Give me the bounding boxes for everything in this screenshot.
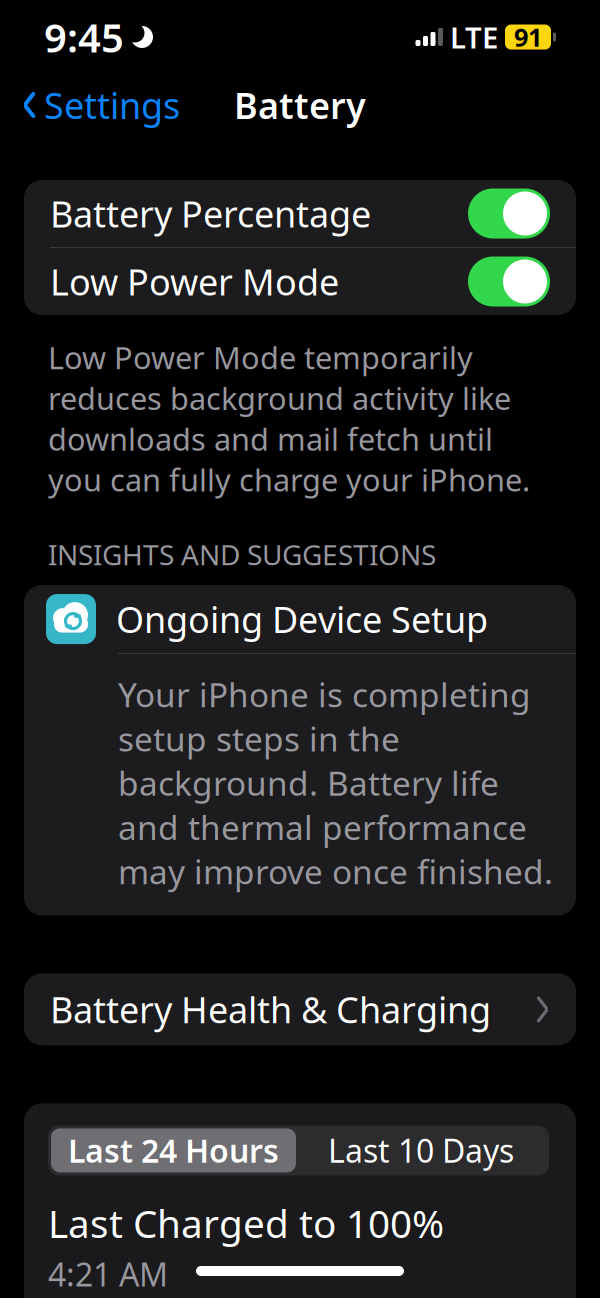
staticText: Settings [44, 81, 180, 129]
staticText: Last Charged to 100% [48, 1197, 444, 1249]
staticText: Low Power Mode [50, 258, 339, 305]
staticText: Battery [234, 81, 366, 129]
staticText: Low Power Mode temporarily reduces backg… [48, 337, 530, 500]
staticText: 4:21 AM [48, 1253, 168, 1295]
button[interactable]: Low Power Mode [24, 248, 576, 315]
staticText: LTE [450, 17, 498, 56]
staticText: Last 10 Days [328, 1129, 514, 1172]
staticText: 9:45 [44, 10, 124, 63]
staticText: 91 [514, 20, 542, 54]
staticText: Last 24 Hours [68, 1129, 279, 1172]
button[interactable]: Battery Percentage [24, 180, 576, 247]
button[interactable]: Last 10 Days [296, 1125, 549, 1175]
button[interactable]: Settings [6, 73, 196, 137]
staticText: Ongoing Device Setup [116, 595, 488, 643]
staticText: Battery Health & Charging [50, 985, 491, 1033]
button[interactable]: Last 24 Hours [48, 1125, 296, 1175]
staticText: Battery Percentage [50, 190, 371, 237]
staticText: Your iPhone is completing setup steps in… [118, 672, 553, 893]
button[interactable]: Battery Health & Charging [24, 973, 576, 1045]
staticText: INSIGHTS AND SUGGESTIONS [48, 536, 436, 573]
